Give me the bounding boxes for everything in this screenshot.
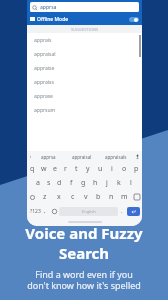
button[interactable]: appraisals <box>99 151 133 162</box>
staticText: f <box>70 178 73 188</box>
staticText: c <box>71 192 75 202</box>
button[interactable]: Emoji <box>41 204 49 218</box>
button[interactable]: appraisal <box>65 151 99 162</box>
staticText: apprsa <box>41 154 56 160</box>
button[interactable]: d <box>54 176 65 190</box>
button[interactable]: ?123 <box>29 204 41 218</box>
staticText: ?123 <box>30 208 41 215</box>
button[interactable]: l <box>125 176 137 190</box>
button[interactable]: p <box>130 162 142 176</box>
staticText: i <box>30 154 32 159</box>
staticText: Find a word even if you don't know how i… <box>27 268 141 292</box>
staticText: b <box>96 192 101 202</box>
staticText: apprais <box>34 37 52 44</box>
button[interactable]: b <box>92 190 105 204</box>
other: Offline <box>30 17 35 22</box>
staticText: g <box>81 178 86 188</box>
button[interactable]: Enter <box>127 207 140 216</box>
button[interactable]: m <box>118 190 131 204</box>
button[interactable]: o <box>118 162 130 176</box>
button[interactable]: Offline <box>30 14 139 25</box>
staticText: apprsa <box>40 4 57 11</box>
staticText: u <box>98 164 103 174</box>
button[interactable]: q <box>27 162 38 176</box>
button[interactable]: apprsum <box>27 103 142 117</box>
staticText: SUGGESTIONS <box>71 27 99 32</box>
button[interactable]: a <box>32 176 43 190</box>
staticText: q <box>30 164 35 174</box>
button[interactable]: Language <box>49 204 59 218</box>
button[interactable]: s <box>43 176 54 190</box>
button[interactable]: x <box>52 190 66 204</box>
button[interactable]: g <box>77 176 89 190</box>
staticText: Offline Mode <box>37 16 69 23</box>
button[interactable]: Backspace <box>131 190 142 204</box>
staticText: n <box>109 192 114 202</box>
staticText: appraisals <box>105 154 127 160</box>
button[interactable]: k <box>113 176 125 190</box>
button[interactable]: v <box>79 190 92 204</box>
staticText: h <box>93 178 98 188</box>
staticText: Voice and Fuzzy Search <box>0 223 168 263</box>
button[interactable]: h <box>89 176 101 190</box>
staticText: . <box>121 207 123 215</box>
staticText: x <box>57 192 61 202</box>
staticText: s <box>47 178 51 188</box>
staticText: v <box>84 192 88 202</box>
other: Search <box>32 5 38 11</box>
button[interactable] <box>129 17 139 22</box>
button[interactable]: z <box>38 190 52 204</box>
button[interactable]: appraise <box>27 61 142 75</box>
button[interactable]: n <box>105 190 118 204</box>
staticText: p <box>134 164 139 174</box>
button[interactable]: . <box>118 204 125 218</box>
staticText: English <box>82 209 96 214</box>
button[interactable]: apprais <box>27 33 142 47</box>
button[interactable]: y <box>82 162 94 176</box>
staticText: apprase <box>34 93 53 100</box>
button[interactable]: apprase <box>27 89 142 103</box>
staticText: j <box>106 178 108 188</box>
button[interactable]: t <box>71 162 82 176</box>
staticText: appraisal <box>72 154 92 160</box>
button[interactable]: Shift <box>27 190 38 204</box>
staticText: a <box>36 178 40 188</box>
staticText: d <box>57 178 62 188</box>
staticText: l <box>130 178 132 188</box>
staticText: y <box>86 164 90 174</box>
staticText: r <box>64 164 67 174</box>
staticText: z <box>43 192 47 202</box>
button[interactable]: apprsa <box>32 151 65 162</box>
staticText: , <box>44 207 46 215</box>
staticText: o <box>122 164 127 174</box>
staticText: appraiss <box>34 79 54 86</box>
button[interactable]: j <box>101 176 113 190</box>
button[interactable]: w <box>38 162 49 176</box>
button[interactable]: r <box>60 162 71 176</box>
button[interactable]: e <box>49 162 60 176</box>
staticText: t <box>75 164 78 174</box>
button[interactable]: u <box>94 162 106 176</box>
staticText: k <box>117 178 121 188</box>
button[interactable]: appraiss <box>27 75 142 89</box>
button[interactable]: appraisal <box>27 47 142 61</box>
button[interactable]: f <box>65 176 77 190</box>
button[interactable]: Voice input <box>133 151 142 162</box>
staticText: m <box>121 192 128 202</box>
button[interactable]: c <box>66 190 79 204</box>
button[interactable]: Search <box>30 0 139 14</box>
staticText: i <box>111 164 113 174</box>
button[interactable]: i <box>106 162 118 176</box>
staticText: w <box>41 164 47 174</box>
staticText: apprsum <box>34 107 56 114</box>
staticText: appraise <box>34 65 55 72</box>
staticText: appraisal <box>34 51 56 58</box>
button[interactable]: Space <box>59 207 118 216</box>
staticText: e <box>53 164 57 174</box>
